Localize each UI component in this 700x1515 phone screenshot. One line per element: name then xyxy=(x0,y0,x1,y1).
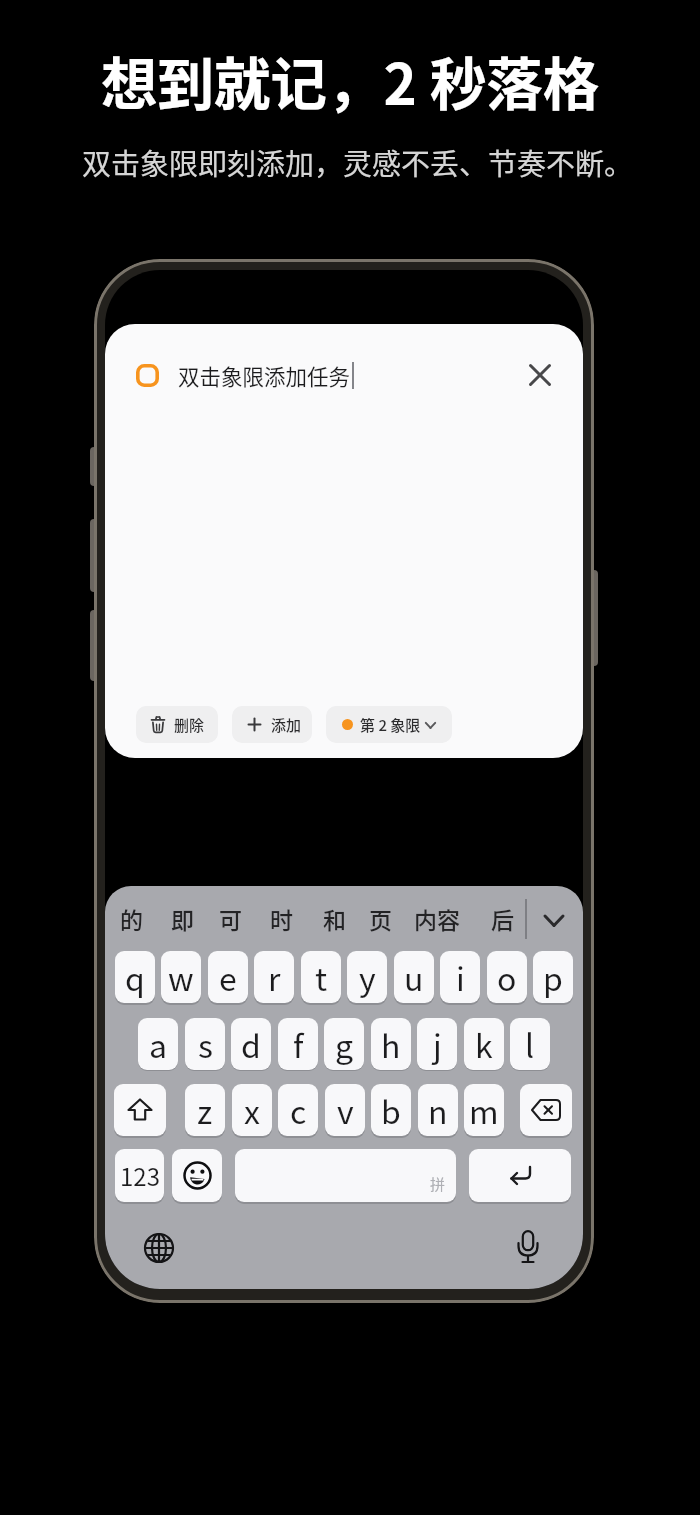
staticText: 即 xyxy=(171,902,194,935)
staticText: i xyxy=(456,954,465,1000)
button[interactable] xyxy=(528,363,552,387)
staticText: 拼 xyxy=(430,1173,446,1195)
staticText: v xyxy=(337,1087,354,1133)
staticText: 双击象限添加任务 xyxy=(178,360,351,391)
button[interactable]: 拼 xyxy=(235,1149,456,1202)
button[interactable] xyxy=(520,1084,572,1136)
staticText: d xyxy=(241,1021,261,1067)
staticText: t xyxy=(315,954,328,1000)
staticText: r xyxy=(268,954,281,1000)
staticText: o xyxy=(497,954,517,1000)
button[interactable] xyxy=(517,1230,539,1264)
staticText: 后 xyxy=(491,902,514,935)
staticText: 页 xyxy=(369,902,392,935)
button[interactable]: d xyxy=(231,1018,271,1070)
button[interactable] xyxy=(172,1149,222,1202)
button[interactable]: m xyxy=(464,1084,504,1136)
staticText: 删除 xyxy=(174,714,205,736)
button[interactable]: 第 2 象限 xyxy=(326,706,452,743)
staticText: 的 xyxy=(120,902,143,935)
button[interactable]: i xyxy=(440,951,480,1003)
button[interactable]: y xyxy=(347,951,387,1003)
staticText: h xyxy=(381,1021,401,1067)
staticText: 想到就记，2 秒落格 xyxy=(101,39,600,121)
button[interactable]: b xyxy=(371,1084,411,1136)
staticText: n xyxy=(428,1087,448,1133)
staticText: a xyxy=(149,1021,168,1067)
button[interactable]: w xyxy=(161,951,201,1003)
button[interactable] xyxy=(144,1233,174,1263)
button[interactable]: 后 xyxy=(472,896,532,940)
staticText: p xyxy=(543,954,563,1000)
button[interactable]: h xyxy=(371,1018,411,1070)
staticText: 添加 xyxy=(271,714,302,736)
button[interactable]: p xyxy=(533,951,573,1003)
staticText: g xyxy=(335,1021,354,1067)
button[interactable]: f xyxy=(278,1018,318,1070)
button[interactable]: g xyxy=(324,1018,364,1070)
button[interactable]: z xyxy=(185,1084,225,1136)
button[interactable]: 和 xyxy=(304,896,364,940)
button[interactable]: t xyxy=(301,951,341,1003)
button[interactable]: e xyxy=(208,951,248,1003)
staticText: 可 xyxy=(219,902,242,935)
staticText: q xyxy=(125,954,145,1000)
staticText: x xyxy=(244,1087,260,1133)
button[interactable]: c xyxy=(278,1084,318,1136)
staticText: m xyxy=(469,1087,499,1133)
button[interactable]: 123 xyxy=(115,1149,164,1202)
staticText: z xyxy=(197,1087,213,1133)
button[interactable]: 删除 xyxy=(136,706,218,743)
button[interactable]: k xyxy=(464,1018,504,1070)
button[interactable]: j xyxy=(417,1018,457,1070)
button[interactable]: u xyxy=(394,951,434,1003)
button[interactable]: v xyxy=(325,1084,365,1136)
button[interactable] xyxy=(136,364,159,387)
button[interactable]: 添加 xyxy=(232,706,312,743)
staticText: j xyxy=(433,1021,442,1067)
button[interactable]: 的 xyxy=(105,896,161,940)
button[interactable]: r xyxy=(254,951,294,1003)
staticText: 时 xyxy=(270,902,293,935)
staticText: 123 xyxy=(120,1158,160,1193)
button[interactable]: x xyxy=(232,1084,272,1136)
button[interactable]: 时 xyxy=(251,896,311,940)
staticText: f xyxy=(293,1021,304,1067)
staticText: w xyxy=(168,954,194,1000)
button[interactable]: s xyxy=(185,1018,225,1070)
staticText: b xyxy=(381,1087,401,1133)
button[interactable]: 页 xyxy=(350,896,410,940)
staticText: 双击象限即刻添加，灵感不丢、节奏不断。 xyxy=(82,141,634,183)
staticText: l xyxy=(525,1021,535,1067)
staticText: 和 xyxy=(323,902,346,935)
button[interactable]: l xyxy=(510,1018,550,1070)
staticText: k xyxy=(475,1021,493,1067)
button[interactable] xyxy=(114,1084,166,1136)
button[interactable] xyxy=(543,914,565,927)
staticText: s xyxy=(198,1021,213,1067)
button[interactable]: 内容 xyxy=(407,896,467,940)
button[interactable]: 即 xyxy=(152,896,212,940)
staticText: 第 2 象限 xyxy=(360,714,421,736)
button[interactable]: o xyxy=(487,951,527,1003)
staticText: y xyxy=(359,954,376,1000)
staticText: e xyxy=(219,954,237,1000)
button[interactable] xyxy=(469,1149,571,1202)
staticText: u xyxy=(404,954,424,1000)
staticText: c xyxy=(290,1087,307,1133)
button[interactable]: n xyxy=(418,1084,458,1136)
staticText: 内容 xyxy=(414,902,460,935)
button[interactable]: a xyxy=(138,1018,178,1070)
button[interactable]: q xyxy=(115,951,155,1003)
button[interactable]: 可 xyxy=(200,896,260,940)
